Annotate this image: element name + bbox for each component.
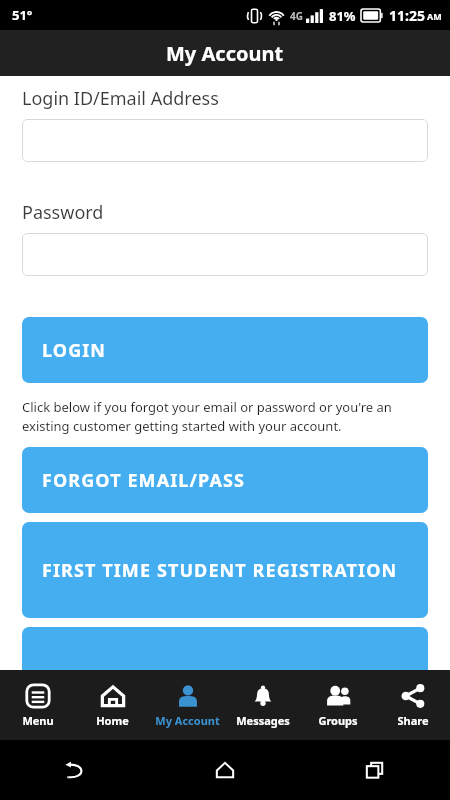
staticText: Menu bbox=[22, 713, 54, 728]
button[interactable]: Groups bbox=[300, 670, 375, 740]
staticText: My Account bbox=[155, 713, 220, 728]
staticText: Password bbox=[22, 200, 104, 225]
staticText: 51° bbox=[12, 6, 33, 24]
button[interactable] bbox=[22, 233, 428, 276]
button[interactable] bbox=[22, 627, 428, 687]
staticText: 81% bbox=[329, 7, 356, 25]
button[interactable]: LOGIN bbox=[22, 317, 428, 383]
staticText: 4G bbox=[290, 9, 303, 23]
staticText: 11:25 bbox=[389, 6, 425, 25]
button[interactable]: My Account bbox=[150, 670, 225, 740]
staticText: LOGIN bbox=[42, 338, 107, 363]
button[interactable]: Home bbox=[75, 670, 150, 740]
staticText: Share bbox=[397, 713, 429, 728]
button[interactable]: Menu bbox=[0, 670, 75, 740]
button[interactable]: Recent apps bbox=[300, 740, 450, 800]
staticText: FORGOT EMAIL/PASS bbox=[42, 468, 246, 493]
staticText: Home bbox=[96, 713, 129, 728]
staticText: Login ID/Email Address bbox=[22, 86, 219, 111]
button[interactable]: Back bbox=[0, 740, 150, 800]
staticText: Click below if you forgot your email or … bbox=[22, 398, 428, 435]
button[interactable]: Share bbox=[375, 670, 450, 740]
staticText: Groups bbox=[318, 713, 358, 728]
button[interactable]: Messages bbox=[225, 670, 300, 740]
staticText: My Account bbox=[166, 40, 284, 67]
button[interactable] bbox=[22, 119, 428, 162]
staticText: AM bbox=[427, 10, 442, 22]
button[interactable]: FIRST TIME STUDENT REGISTRATION bbox=[22, 522, 428, 618]
button[interactable]: Home bbox=[150, 740, 300, 800]
staticText: FIRST TIME STUDENT REGISTRATION bbox=[42, 558, 398, 583]
staticText: Messages bbox=[236, 713, 290, 728]
button[interactable]: FORGOT EMAIL/PASS bbox=[22, 447, 428, 513]
